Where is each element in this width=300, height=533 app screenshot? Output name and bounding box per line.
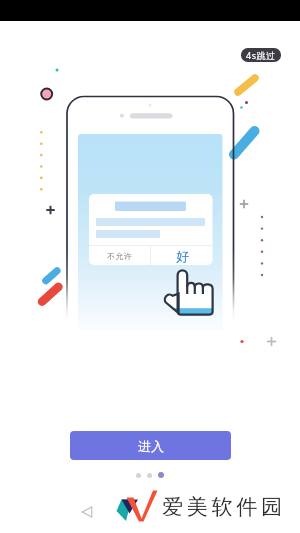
button[interactable]: 不允许 [89, 246, 150, 265]
button[interactable]: 好 [151, 246, 213, 265]
button[interactable]: 进入 [70, 431, 231, 460]
staticText: 爱美软件园 [160, 494, 284, 520]
button[interactable]: 4s跳过 [241, 48, 281, 62]
staticText: 好 [176, 248, 189, 264]
other: Back [80, 505, 94, 519]
staticText: 4s跳过 [246, 49, 276, 61]
staticText: 不允许 [107, 251, 133, 261]
staticText: 进入 [138, 438, 164, 454]
